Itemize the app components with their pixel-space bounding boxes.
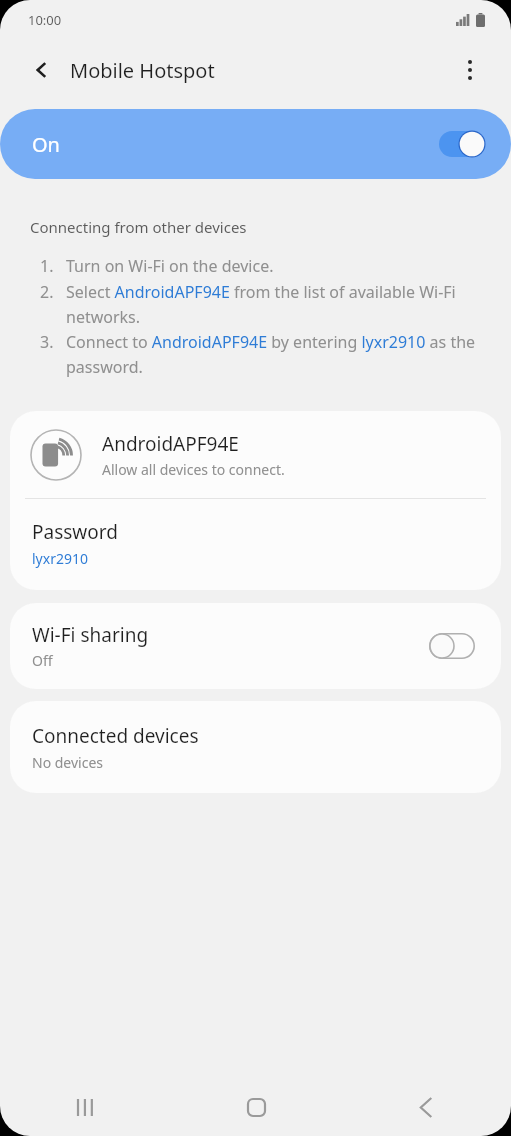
staticText: Wi-Fi sharing <box>32 622 149 648</box>
button[interactable]: AndroidAPF94E <box>10 411 501 498</box>
button[interactable]: On <box>0 109 511 179</box>
staticText: 3. <box>40 331 66 353</box>
button[interactable]: Password <box>10 499 501 590</box>
button[interactable]: Back <box>22 50 62 90</box>
button[interactable]: Connected devices <box>10 701 501 793</box>
button[interactable]: Home <box>171 1078 341 1136</box>
staticText: Turn on Wi-Fi on the device. <box>66 255 274 277</box>
staticText: Connect to AndroidAPF94E by entering lyx… <box>66 331 481 377</box>
staticText: 10:00 <box>28 11 62 29</box>
button[interactable]: Recents <box>0 1078 171 1136</box>
staticText: On <box>32 131 60 158</box>
staticText: Password <box>32 519 118 545</box>
staticText: lyxr2910 <box>32 549 88 568</box>
staticText: Connected devices <box>32 723 199 749</box>
staticText: AndroidAPF94E <box>102 431 239 457</box>
staticText: Allow all devices to connect. <box>102 460 285 479</box>
staticText: Connecting from other devices <box>30 217 247 237</box>
staticText: Off <box>32 651 53 670</box>
staticText: Mobile Hotspot <box>70 57 215 84</box>
button[interactable]: More options <box>449 49 491 91</box>
staticText: 1. <box>40 255 66 277</box>
staticText: No devices <box>32 753 104 772</box>
staticText: 2. <box>40 281 66 303</box>
button[interactable]: Back <box>341 1078 511 1136</box>
staticText: Select AndroidAPF94E from the list of av… <box>66 281 481 327</box>
button[interactable]: Wi-Fi sharing <box>10 603 501 689</box>
